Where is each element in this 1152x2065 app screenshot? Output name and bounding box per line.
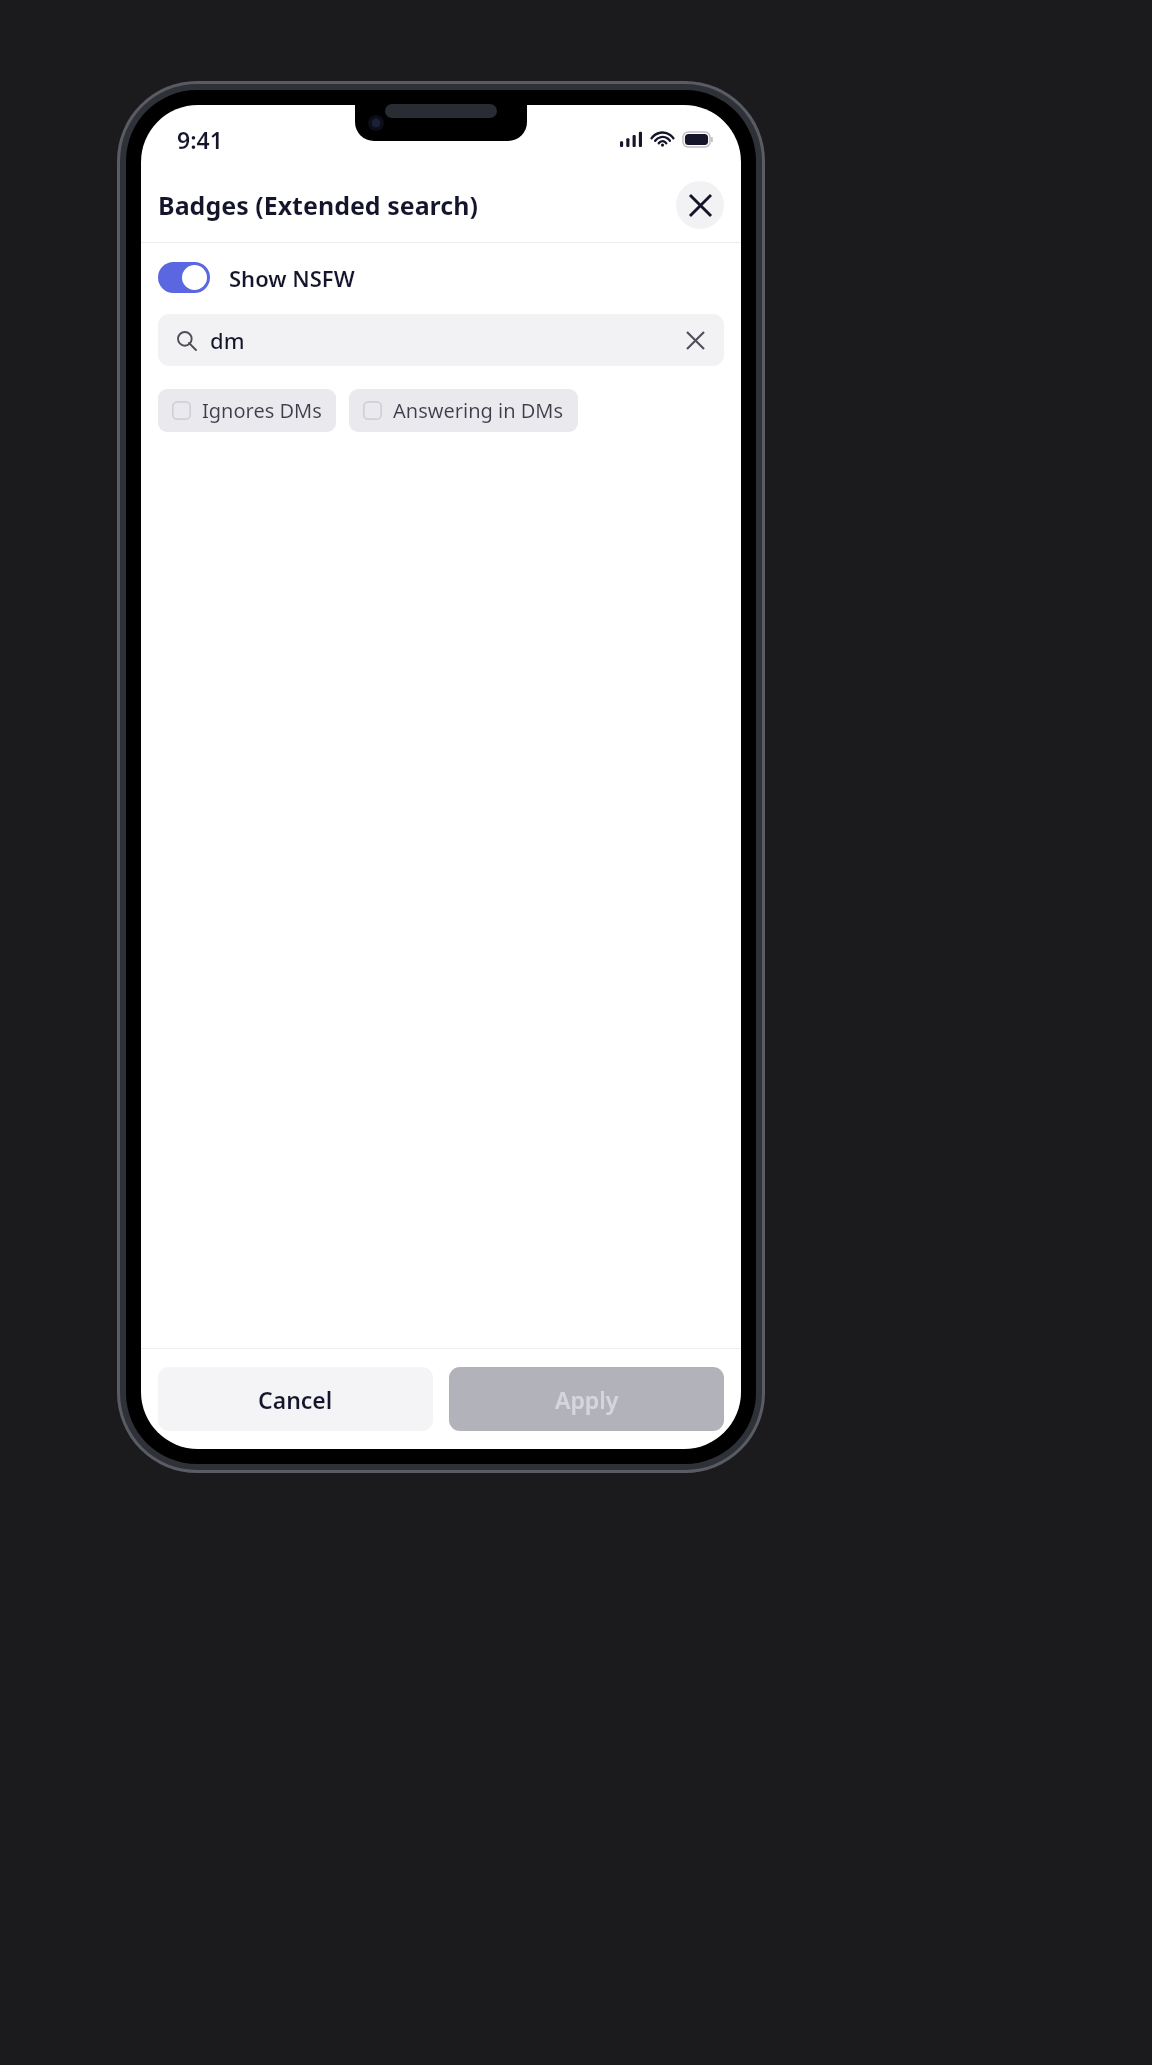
button[interactable]: Show NSFW <box>158 262 724 293</box>
button[interactable]: Close <box>676 181 724 229</box>
staticText: 9:41 <box>177 124 223 155</box>
button[interactable]: Clear search <box>681 326 709 354</box>
button[interactable]: Ignores DMs <box>158 389 336 432</box>
button[interactable]: Answering in DMs <box>349 389 578 432</box>
staticText: dm <box>210 325 245 355</box>
staticText: Show NSFW <box>229 263 355 293</box>
button[interactable]: Cancel <box>158 1367 433 1431</box>
staticText: Ignores DMs <box>202 397 322 424</box>
button[interactable]: dm <box>158 314 724 366</box>
button[interactable]: Apply <box>449 1367 724 1431</box>
staticText: Badges (Extended search) <box>158 188 478 222</box>
staticText: Apply <box>555 1384 619 1415</box>
staticText: Cancel <box>258 1384 333 1415</box>
staticText: Answering in DMs <box>393 397 564 424</box>
